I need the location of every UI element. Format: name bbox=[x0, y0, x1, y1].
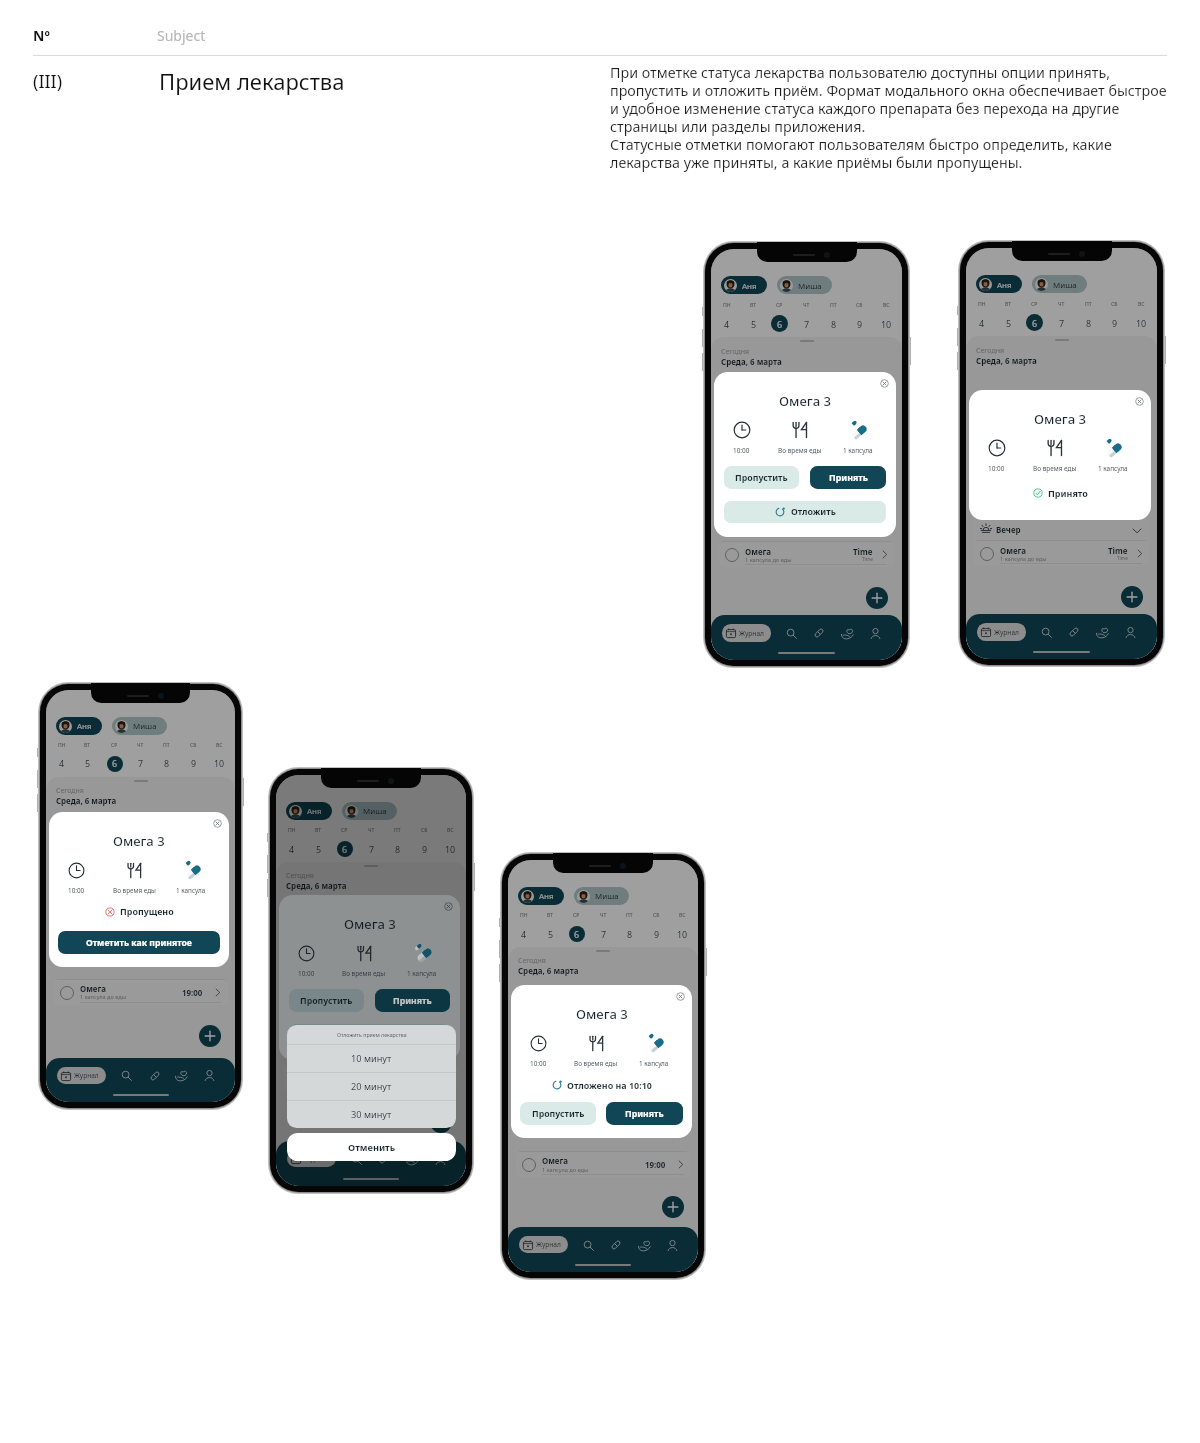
button[interactable]: 10 bbox=[1132, 314, 1151, 331]
button[interactable]: Принять bbox=[375, 989, 450, 1012]
button[interactable]: Аня bbox=[976, 275, 1022, 293]
staticText: 7 bbox=[369, 843, 375, 855]
button[interactable]: Отметить как принятое bbox=[58, 931, 220, 954]
button[interactable]: Care bbox=[404, 1151, 420, 1167]
button[interactable]: Принять bbox=[810, 466, 886, 489]
button[interactable]: 7 bbox=[1052, 314, 1071, 331]
button[interactable]: Medicines bbox=[376, 1151, 392, 1167]
button[interactable]: 30 минут bbox=[287, 1101, 456, 1128]
button[interactable]: Миша bbox=[777, 276, 832, 294]
button[interactable]: Care bbox=[1094, 624, 1110, 640]
button[interactable]: 5 bbox=[309, 841, 328, 857]
button[interactable]: Search bbox=[348, 1151, 364, 1167]
button[interactable]: 5 bbox=[999, 314, 1018, 331]
button[interactable]: Medicines bbox=[608, 1237, 624, 1253]
button[interactable]: Medicines bbox=[147, 1068, 162, 1083]
button[interactable]: 8 bbox=[388, 841, 407, 857]
button[interactable]: Отменить bbox=[287, 1133, 456, 1161]
button[interactable]: Care bbox=[839, 625, 855, 641]
button[interactable]: 10 bbox=[441, 841, 460, 857]
button[interactable]: Журнал bbox=[722, 624, 771, 642]
button[interactable]: Medicines bbox=[1066, 624, 1082, 640]
button[interactable]: 8 bbox=[620, 926, 639, 942]
button[interactable]: Журнал bbox=[519, 1236, 568, 1253]
button[interactable]: 6 bbox=[105, 756, 124, 772]
staticText: Во время еды bbox=[113, 886, 156, 895]
button[interactable]: 5 bbox=[541, 926, 560, 942]
button[interactable]: 4 bbox=[52, 756, 71, 772]
button[interactable]: Add bbox=[866, 587, 888, 609]
button[interactable]: Омега bbox=[284, 1066, 458, 1092]
button[interactable]: 7 bbox=[797, 315, 816, 332]
button[interactable]: Омега bbox=[54, 979, 228, 1005]
button[interactable]: 9 bbox=[415, 841, 434, 857]
button[interactable]: Миша bbox=[1032, 275, 1087, 293]
button[interactable]: 9 bbox=[850, 315, 869, 332]
button[interactable]: 20 минут bbox=[287, 1073, 456, 1100]
button[interactable]: Search bbox=[119, 1068, 134, 1083]
button[interactable]: 6 bbox=[1025, 314, 1044, 331]
button[interactable]: Profile bbox=[867, 625, 883, 641]
button[interactable]: Profile bbox=[1122, 624, 1138, 640]
button[interactable]: 9 bbox=[647, 926, 666, 942]
button[interactable]: Close bbox=[676, 992, 685, 1001]
button[interactable]: Care bbox=[636, 1237, 652, 1253]
button[interactable]: Close bbox=[1135, 397, 1144, 406]
button[interactable]: Search bbox=[783, 625, 799, 641]
button[interactable]: Search bbox=[1038, 624, 1054, 640]
button[interactable]: 10 bbox=[673, 926, 692, 942]
button[interactable]: 6 bbox=[335, 841, 354, 857]
button[interactable]: Отложить bbox=[724, 501, 886, 523]
button[interactable]: 10 bbox=[877, 315, 896, 332]
button[interactable]: 7 bbox=[362, 841, 381, 857]
button[interactable]: 7 bbox=[131, 756, 150, 772]
button[interactable]: 4 bbox=[282, 841, 301, 857]
button[interactable]: 4 bbox=[972, 314, 991, 331]
button[interactable]: 10 минут bbox=[287, 1045, 456, 1072]
button[interactable]: Profile bbox=[664, 1237, 680, 1253]
button[interactable]: Пропустить bbox=[520, 1102, 596, 1125]
button[interactable]: Журнал bbox=[287, 1150, 336, 1167]
button[interactable]: Add bbox=[662, 1196, 684, 1218]
button[interactable]: Search bbox=[580, 1237, 596, 1253]
button[interactable]: Журнал bbox=[57, 1067, 106, 1084]
button[interactable]: Миша bbox=[342, 802, 397, 820]
button[interactable]: Журнал bbox=[977, 623, 1026, 641]
button[interactable]: Close bbox=[444, 902, 453, 911]
button[interactable]: Care bbox=[174, 1068, 189, 1083]
button[interactable]: 6 bbox=[770, 315, 789, 332]
button[interactable]: 4 bbox=[717, 315, 736, 332]
button[interactable]: Add bbox=[199, 1025, 221, 1047]
button[interactable]: Омега bbox=[974, 540, 1149, 566]
button[interactable]: 9 bbox=[184, 756, 203, 772]
button[interactable]: Принять bbox=[606, 1102, 683, 1125]
button[interactable]: 8 bbox=[824, 315, 843, 332]
button[interactable]: Миша bbox=[112, 717, 167, 735]
button[interactable]: Аня bbox=[56, 717, 102, 735]
button[interactable]: 8 bbox=[1079, 314, 1098, 331]
button[interactable]: 5 bbox=[744, 315, 763, 332]
button[interactable]: Add bbox=[1121, 586, 1143, 608]
button[interactable]: Аня bbox=[721, 276, 767, 294]
button[interactable]: Profile bbox=[432, 1151, 448, 1167]
button[interactable]: Medicines bbox=[811, 625, 827, 641]
button[interactable]: Аня bbox=[286, 802, 332, 820]
button[interactable]: Пропустить bbox=[724, 466, 799, 489]
button[interactable]: Пропустить bbox=[289, 989, 364, 1012]
button[interactable]: 8 bbox=[157, 756, 176, 772]
button[interactable]: Вечер bbox=[974, 517, 1149, 540]
button[interactable]: Омега bbox=[719, 541, 894, 567]
button[interactable]: 5 bbox=[78, 756, 97, 772]
button[interactable]: Миша bbox=[574, 887, 629, 905]
button[interactable]: Add bbox=[430, 1111, 452, 1133]
button[interactable]: Close bbox=[880, 379, 889, 388]
button[interactable]: Close bbox=[213, 819, 222, 828]
button[interactable]: 10 bbox=[210, 756, 229, 772]
button[interactable]: Омега bbox=[516, 1151, 690, 1177]
button[interactable]: Profile bbox=[202, 1068, 217, 1083]
button[interactable]: 7 bbox=[594, 926, 613, 942]
button[interactable]: Аня bbox=[518, 887, 564, 905]
button[interactable]: 4 bbox=[514, 926, 533, 942]
button[interactable]: 9 bbox=[1105, 314, 1124, 331]
button[interactable]: 6 bbox=[567, 926, 586, 942]
